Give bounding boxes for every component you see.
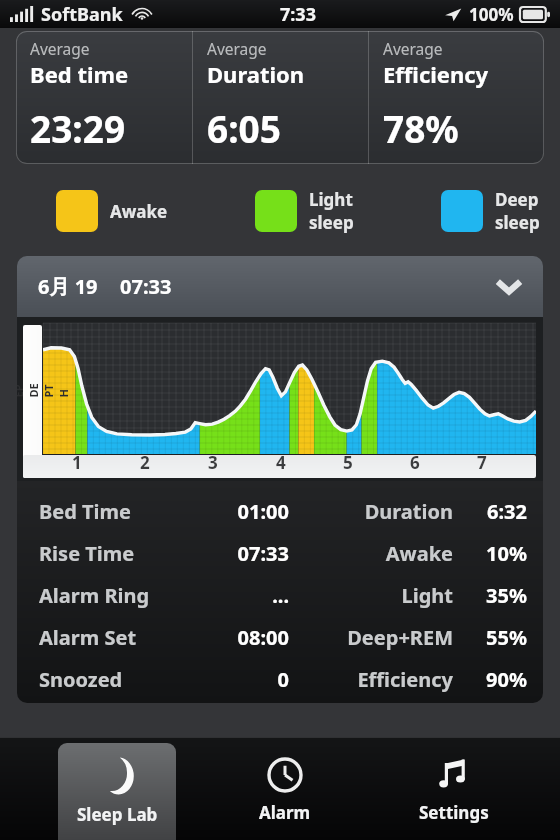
- staticText: 08:00: [193, 624, 289, 651]
- staticText: 4: [276, 451, 286, 474]
- staticText: 6: [410, 451, 420, 474]
- button[interactable]: Alarm Set: [17, 616, 543, 658]
- staticText: 1: [72, 451, 82, 474]
- button[interactable]: 6月 19: [17, 256, 543, 317]
- staticText: 6:05: [207, 103, 281, 153]
- staticText: 90%: [465, 666, 527, 693]
- staticText: SoftBank: [41, 2, 123, 27]
- staticText: sleep: [309, 211, 354, 234]
- staticText: Sleep Lab: [77, 803, 158, 826]
- staticText: 10%: [465, 540, 527, 567]
- staticText: Bed time: [30, 59, 129, 89]
- staticText: 07:33: [120, 273, 172, 300]
- staticText: Deep: [495, 188, 539, 211]
- button[interactable]: Alarm Ring: [17, 574, 543, 616]
- staticText: 6:32: [465, 498, 527, 525]
- staticText: 5: [343, 451, 353, 474]
- staticText: Duration: [323, 498, 453, 525]
- button[interactable]: Deep: [441, 188, 540, 234]
- staticText: Awake: [323, 540, 453, 567]
- button[interactable]: Light: [255, 188, 354, 234]
- staticText: 78%: [383, 103, 459, 153]
- other: Settings: [434, 755, 474, 795]
- other: Sleep Lab: [96, 755, 138, 797]
- button[interactable]: Settings: [395, 743, 513, 840]
- staticText: 23:29: [30, 103, 126, 153]
- staticText: 100%: [469, 3, 514, 26]
- staticText: Settings: [419, 801, 489, 824]
- other: Expand details: [496, 279, 522, 294]
- staticText: sleep: [495, 211, 540, 234]
- staticText: Alarm Ring: [39, 582, 150, 609]
- staticText: ...: [193, 582, 289, 609]
- staticText: Average: [207, 38, 267, 59]
- staticText: 01:00: [193, 498, 289, 525]
- button[interactable]: Average: [16, 31, 544, 164]
- staticText: Average: [30, 38, 90, 59]
- staticText: Snoozed: [39, 666, 123, 693]
- staticText: Light: [323, 582, 453, 609]
- staticText: Alarm Set: [39, 624, 137, 651]
- staticText: Efficiency: [383, 59, 489, 89]
- staticText: Awake: [110, 200, 168, 223]
- staticText: 2: [140, 451, 150, 474]
- staticText: 07:33: [193, 540, 289, 567]
- staticText: 0: [193, 666, 289, 693]
- staticText: 7: [477, 451, 487, 474]
- staticText: Bed Time: [39, 498, 132, 525]
- button[interactable]: Awake: [56, 190, 168, 232]
- staticText: Rise Time: [39, 540, 135, 567]
- button[interactable]: Rise Time: [17, 532, 543, 574]
- staticText: Duration: [207, 59, 305, 89]
- staticText: Efficiency: [323, 666, 453, 693]
- staticText: 35%: [465, 582, 527, 609]
- staticText: Deep+REM: [323, 624, 453, 651]
- staticText: 7:33: [280, 2, 316, 27]
- button[interactable]: Bed Time: [17, 490, 543, 532]
- staticText: Light: [309, 188, 353, 211]
- button[interactable]: Sleep Lab: [58, 743, 176, 840]
- staticText: Alarm: [259, 801, 311, 824]
- staticText: 3: [208, 451, 218, 474]
- other: Alarm: [265, 755, 305, 795]
- staticText: 6月 19: [38, 273, 98, 300]
- staticText: 55%: [465, 624, 527, 651]
- button[interactable]: Alarm: [226, 743, 344, 840]
- button[interactable]: Snoozed: [17, 658, 543, 700]
- staticText: Average: [383, 38, 443, 59]
- staticText: SLEEP DEPTH: [17, 377, 70, 397]
